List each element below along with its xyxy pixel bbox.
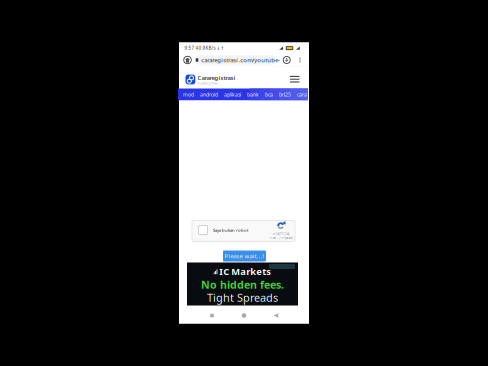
staticText: Cararegistrasi <box>197 74 235 82</box>
button[interactable]: Downloads <box>281 53 293 66</box>
staticText: bri25 <box>279 91 291 98</box>
button[interactable]: cararegistrasi.com/youtube- <box>195 55 276 65</box>
button[interactable]: Cararegistrasi <box>185 73 235 85</box>
button[interactable]: Please wait...! <box>223 250 266 261</box>
button[interactable]: bank <box>244 88 262 100</box>
button[interactable]: bri25 <box>276 88 294 100</box>
staticText: Tight Spreads <box>207 290 278 305</box>
button[interactable]: Saya bukan robot <box>197 222 210 237</box>
staticText: android <box>200 91 218 98</box>
staticText: Privasi - Persyaratan <box>268 236 293 240</box>
button[interactable]: android <box>197 88 221 100</box>
staticText: 9:57 40.9KB/s ↓↑ <box>184 45 224 51</box>
staticText: Please wait...! <box>224 252 264 260</box>
staticText: mod <box>183 91 194 98</box>
button[interactable]: IC Markets <box>187 262 298 305</box>
button[interactable]: cara <box>294 88 310 100</box>
staticText: aplikasi <box>224 91 241 98</box>
button[interactable]: aplikasi <box>221 88 244 100</box>
staticText: bca <box>265 91 273 98</box>
button[interactable]: Menu <box>287 70 303 88</box>
staticText: No hidden fees. <box>201 277 284 292</box>
button[interactable]: More options <box>295 53 304 66</box>
button[interactable]: Home <box>181 53 194 66</box>
staticText: cararegistrasi.com/youtube- <box>201 56 280 64</box>
staticText: cara <box>297 91 307 98</box>
staticText: IC Markets <box>219 265 271 278</box>
button[interactable]: mod <box>180 88 197 100</box>
staticText: Saya bukan robot <box>213 227 249 233</box>
button[interactable]: Home <box>228 307 260 323</box>
staticText: reCAPTCHA <box>272 232 289 236</box>
button[interactable]: Recent apps <box>196 307 228 323</box>
button[interactable]: bca <box>262 88 276 100</box>
staticText: bank <box>247 91 259 98</box>
staticText: by cararegistrasi <box>197 82 217 85</box>
button[interactable]: Back <box>260 307 292 323</box>
